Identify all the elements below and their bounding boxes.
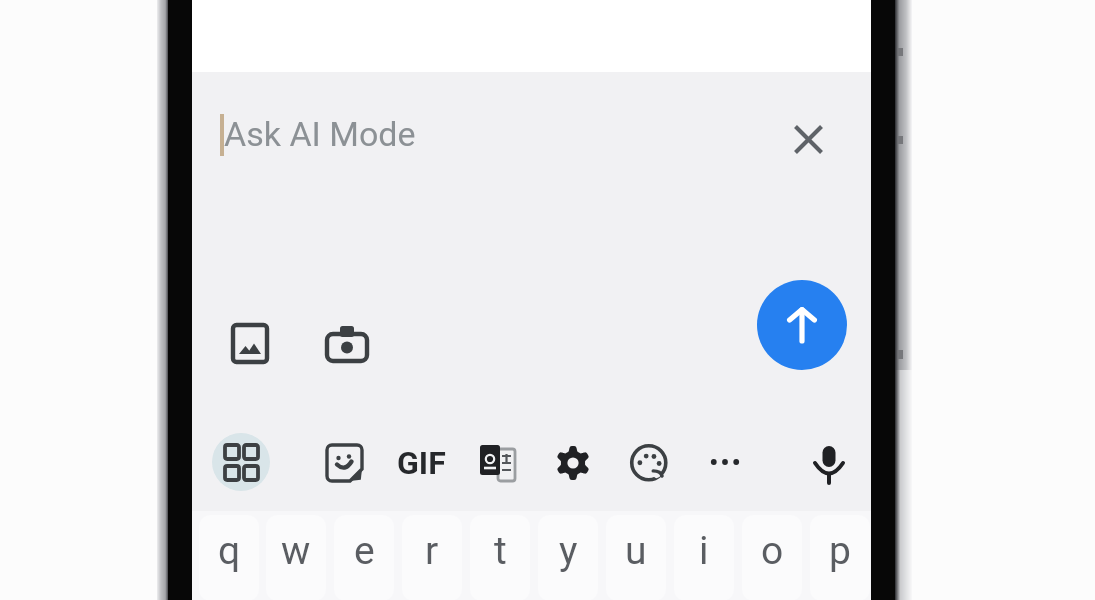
staticText: q <box>218 528 241 574</box>
staticText: e <box>354 528 375 574</box>
staticText: o <box>761 528 784 574</box>
button[interactable]: y <box>538 515 598 600</box>
staticText: t <box>494 528 507 574</box>
staticText: GIF <box>397 444 446 482</box>
staticText: Ask AI Mode <box>224 114 416 154</box>
staticText: u <box>625 528 647 574</box>
button[interactable]: Send <box>757 280 847 370</box>
button[interactable]: Themes <box>620 434 678 492</box>
staticText: w <box>281 528 311 574</box>
button[interactable]: i <box>674 515 734 600</box>
button[interactable]: u <box>606 515 666 600</box>
button[interactable]: p <box>810 515 870 600</box>
staticText: y <box>559 528 578 574</box>
button[interactable]: o <box>742 515 802 600</box>
button[interactable]: Insert image <box>220 313 280 373</box>
button[interactable]: Camera <box>317 313 377 373</box>
button[interactable]: Stickers <box>315 434 373 492</box>
button[interactable]: GIF <box>392 434 450 492</box>
button[interactable]: Settings <box>544 434 602 492</box>
button[interactable]: t <box>470 515 530 600</box>
button[interactable]: Voice input <box>800 435 858 493</box>
button[interactable]: q <box>199 515 259 600</box>
button[interactable]: e <box>334 515 394 600</box>
button[interactable]: w <box>266 515 326 600</box>
button[interactable]: r <box>402 515 462 600</box>
staticText: r <box>425 528 439 574</box>
button[interactable]: Translate <box>468 434 526 492</box>
button[interactable]: Close <box>778 109 838 169</box>
staticText: i <box>699 528 709 574</box>
button[interactable]: Apps <box>212 433 270 491</box>
staticText: p <box>829 528 851 574</box>
button[interactable]: More <box>696 433 754 491</box>
